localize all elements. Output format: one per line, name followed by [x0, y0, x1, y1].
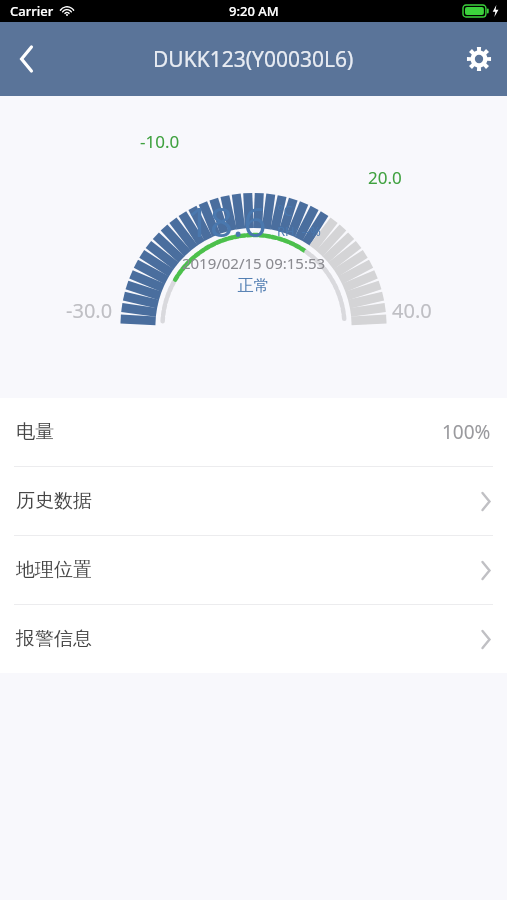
staticText: 9:20 AM — [229, 2, 279, 20]
staticText: 18.6 — [187, 194, 267, 248]
staticText: RH: --% — [277, 222, 321, 240]
staticText: DUKK123(Y00030L6) — [153, 45, 354, 74]
staticText: 20.0 — [368, 166, 402, 189]
staticText: 历史数据 — [16, 489, 92, 513]
button[interactable]: 历史数据 — [0, 467, 507, 535]
button[interactable]: Back — [0, 33, 52, 85]
button[interactable]: 电量 — [0, 398, 507, 466]
staticText: 40.0 — [392, 297, 432, 324]
staticText: °C — [277, 200, 293, 220]
staticText: 2019/02/15 09:15:53 — [0, 253, 507, 273]
staticText: 地理位置 — [16, 558, 92, 582]
staticText: -10.0 — [140, 130, 180, 153]
staticText: 100% — [442, 419, 491, 445]
button[interactable]: Settings — [451, 31, 507, 87]
button[interactable]: 报警信息 — [0, 605, 507, 673]
button[interactable]: 地理位置 — [0, 536, 507, 604]
staticText: 报警信息 — [16, 627, 92, 651]
staticText: 正常 — [0, 276, 507, 296]
staticText: 电量 — [16, 420, 54, 444]
staticText: -30.0 — [66, 297, 113, 324]
staticText: Carrier — [10, 2, 54, 20]
